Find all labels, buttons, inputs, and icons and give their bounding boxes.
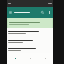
button[interactable]: Navigation menu	[7, 7, 14, 18]
button[interactable]	[14, 7, 39, 18]
button[interactable]: More options	[46, 7, 53, 18]
button[interactable]: Items	[23, 53, 38, 64]
button[interactable]: Search	[39, 7, 46, 18]
button[interactable]: Profile	[38, 53, 53, 64]
button[interactable]	[7, 45, 53, 53]
button[interactable]	[8, 18, 52, 28]
button[interactable]	[7, 37, 53, 45]
button[interactable]: Home	[7, 53, 23, 64]
button[interactable]	[7, 28, 53, 37]
